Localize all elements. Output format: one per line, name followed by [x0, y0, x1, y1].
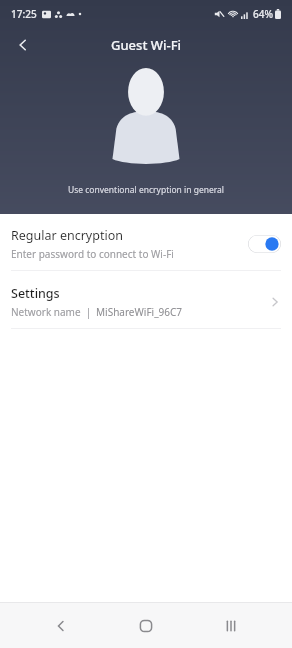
staticText: Use conventional encryption in general: [0, 184, 292, 196]
staticText: Guest Wi-Fi: [111, 36, 182, 54]
staticText: 17:25: [11, 7, 37, 21]
staticText: Enter password to connect to Wi-Fi: [11, 247, 174, 261]
staticText: 64%: [253, 7, 273, 21]
button[interactable]: Settings: [0, 276, 292, 328]
button[interactable]: Home: [122, 603, 170, 648]
staticText: MiShareWiFi_96C7: [96, 305, 183, 319]
staticText: Network name |: [11, 305, 92, 319]
button[interactable]: Back: [6, 28, 40, 62]
button[interactable]: Back: [37, 603, 85, 648]
button[interactable]: Recent apps: [207, 603, 255, 648]
button[interactable]: Regular encryption: [0, 218, 292, 270]
staticText: Settings: [11, 285, 60, 302]
button[interactable]: Regular encryption toggle: [248, 235, 281, 253]
staticText: Regular encryption: [11, 227, 123, 244]
